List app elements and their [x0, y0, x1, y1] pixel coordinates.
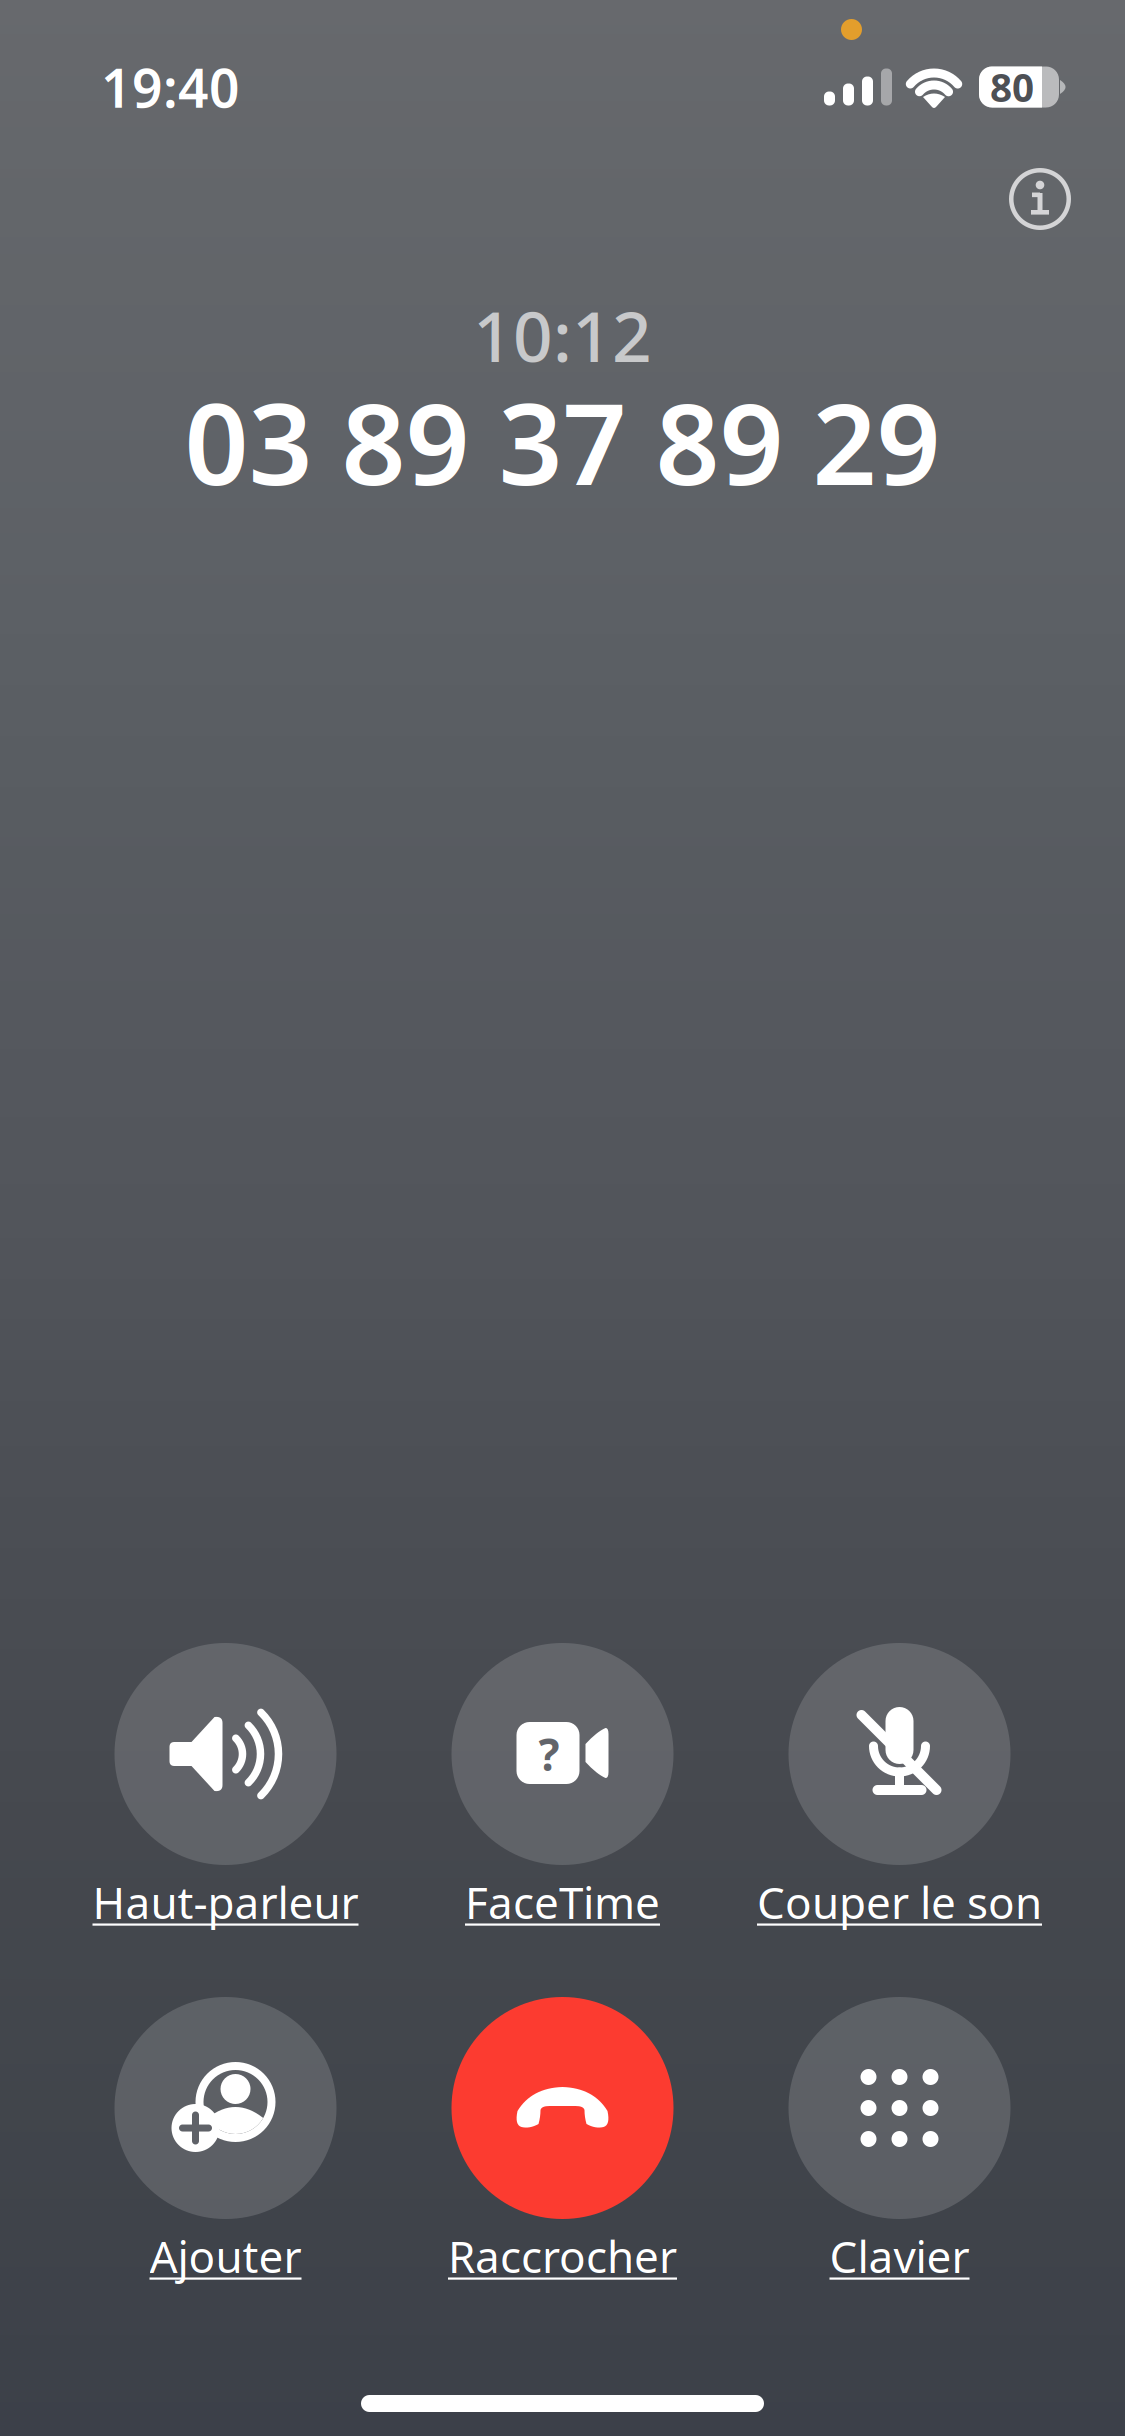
- staticText: ?: [538, 1725, 559, 1783]
- staticText: FaceTime: [465, 1873, 660, 1931]
- staticText: 03 89 37 89 29: [184, 367, 940, 516]
- button[interactable]: Raccrocher: [394, 1993, 731, 2285]
- button[interactable]: Haut-parleur: [57, 1639, 394, 1931]
- button[interactable]: Clavier: [731, 1993, 1068, 2285]
- button[interactable]: Ajouter: [57, 1993, 394, 2285]
- button[interactable]: Call details: [993, 152, 1087, 246]
- button[interactable]: Couper le son: [731, 1639, 1068, 1931]
- staticText: 80: [990, 61, 1034, 113]
- staticText: Ajouter: [149, 2227, 301, 2285]
- staticText: Haut-parleur: [92, 1873, 358, 1931]
- staticText: 19:40: [101, 52, 240, 122]
- staticText: 10:12: [473, 289, 652, 381]
- button[interactable]: ?: [394, 1639, 731, 1931]
- staticText: Couper le son: [757, 1873, 1042, 1931]
- staticText: Clavier: [829, 2227, 969, 2285]
- staticText: Raccrocher: [448, 2227, 677, 2285]
